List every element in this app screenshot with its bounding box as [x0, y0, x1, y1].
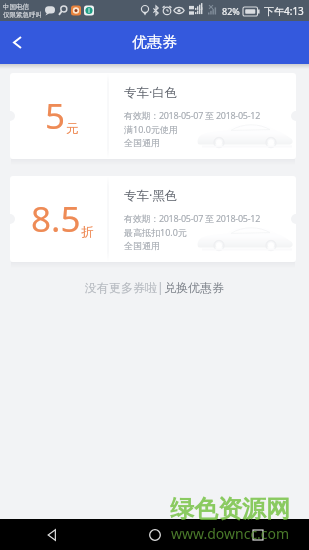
button[interactable]: Home [103, 519, 206, 550]
staticText: 有效期：2018-05-07 至 2018-05-12 [124, 109, 261, 121]
staticText: 8.5 [31, 195, 81, 243]
staticText: 82% [222, 5, 240, 17]
staticText: 有效期：2018-05-07 至 2018-05-12 [124, 212, 261, 224]
button[interactable]: 8.5 [10, 176, 296, 262]
staticText: 专车·白色 [124, 84, 178, 101]
button[interactable]: Recents [206, 519, 309, 550]
staticText: 没有更多券啦 [85, 280, 157, 295]
staticText: 最高抵扣10.0元 [124, 226, 187, 238]
staticText: 全国通用 [124, 137, 160, 148]
staticText: www.downcc.com [171, 524, 290, 543]
staticText: 中国电信 [3, 3, 29, 11]
staticText: 元 [66, 121, 79, 137]
staticText: 绿色资源网 [170, 494, 290, 524]
staticText: 优惠券 [132, 33, 177, 52]
staticText: 全国通用 [124, 240, 160, 251]
staticText: 折 [81, 224, 94, 240]
staticText: 兑换优惠券 [164, 280, 224, 295]
staticText: 专车·黑色 [124, 187, 178, 204]
button[interactable]: Back [0, 21, 34, 64]
staticText: 下午4:13 [264, 4, 304, 18]
staticText: 仅限紧急呼叫 [3, 11, 42, 19]
button[interactable]: Back [0, 519, 103, 550]
staticText: 5 [45, 92, 66, 140]
button[interactable]: 5 [10, 73, 296, 159]
button[interactable]: 兑换优惠券 [164, 280, 224, 295]
staticText: 满10.0元使用 [124, 123, 178, 135]
staticText: | [157, 279, 164, 295]
